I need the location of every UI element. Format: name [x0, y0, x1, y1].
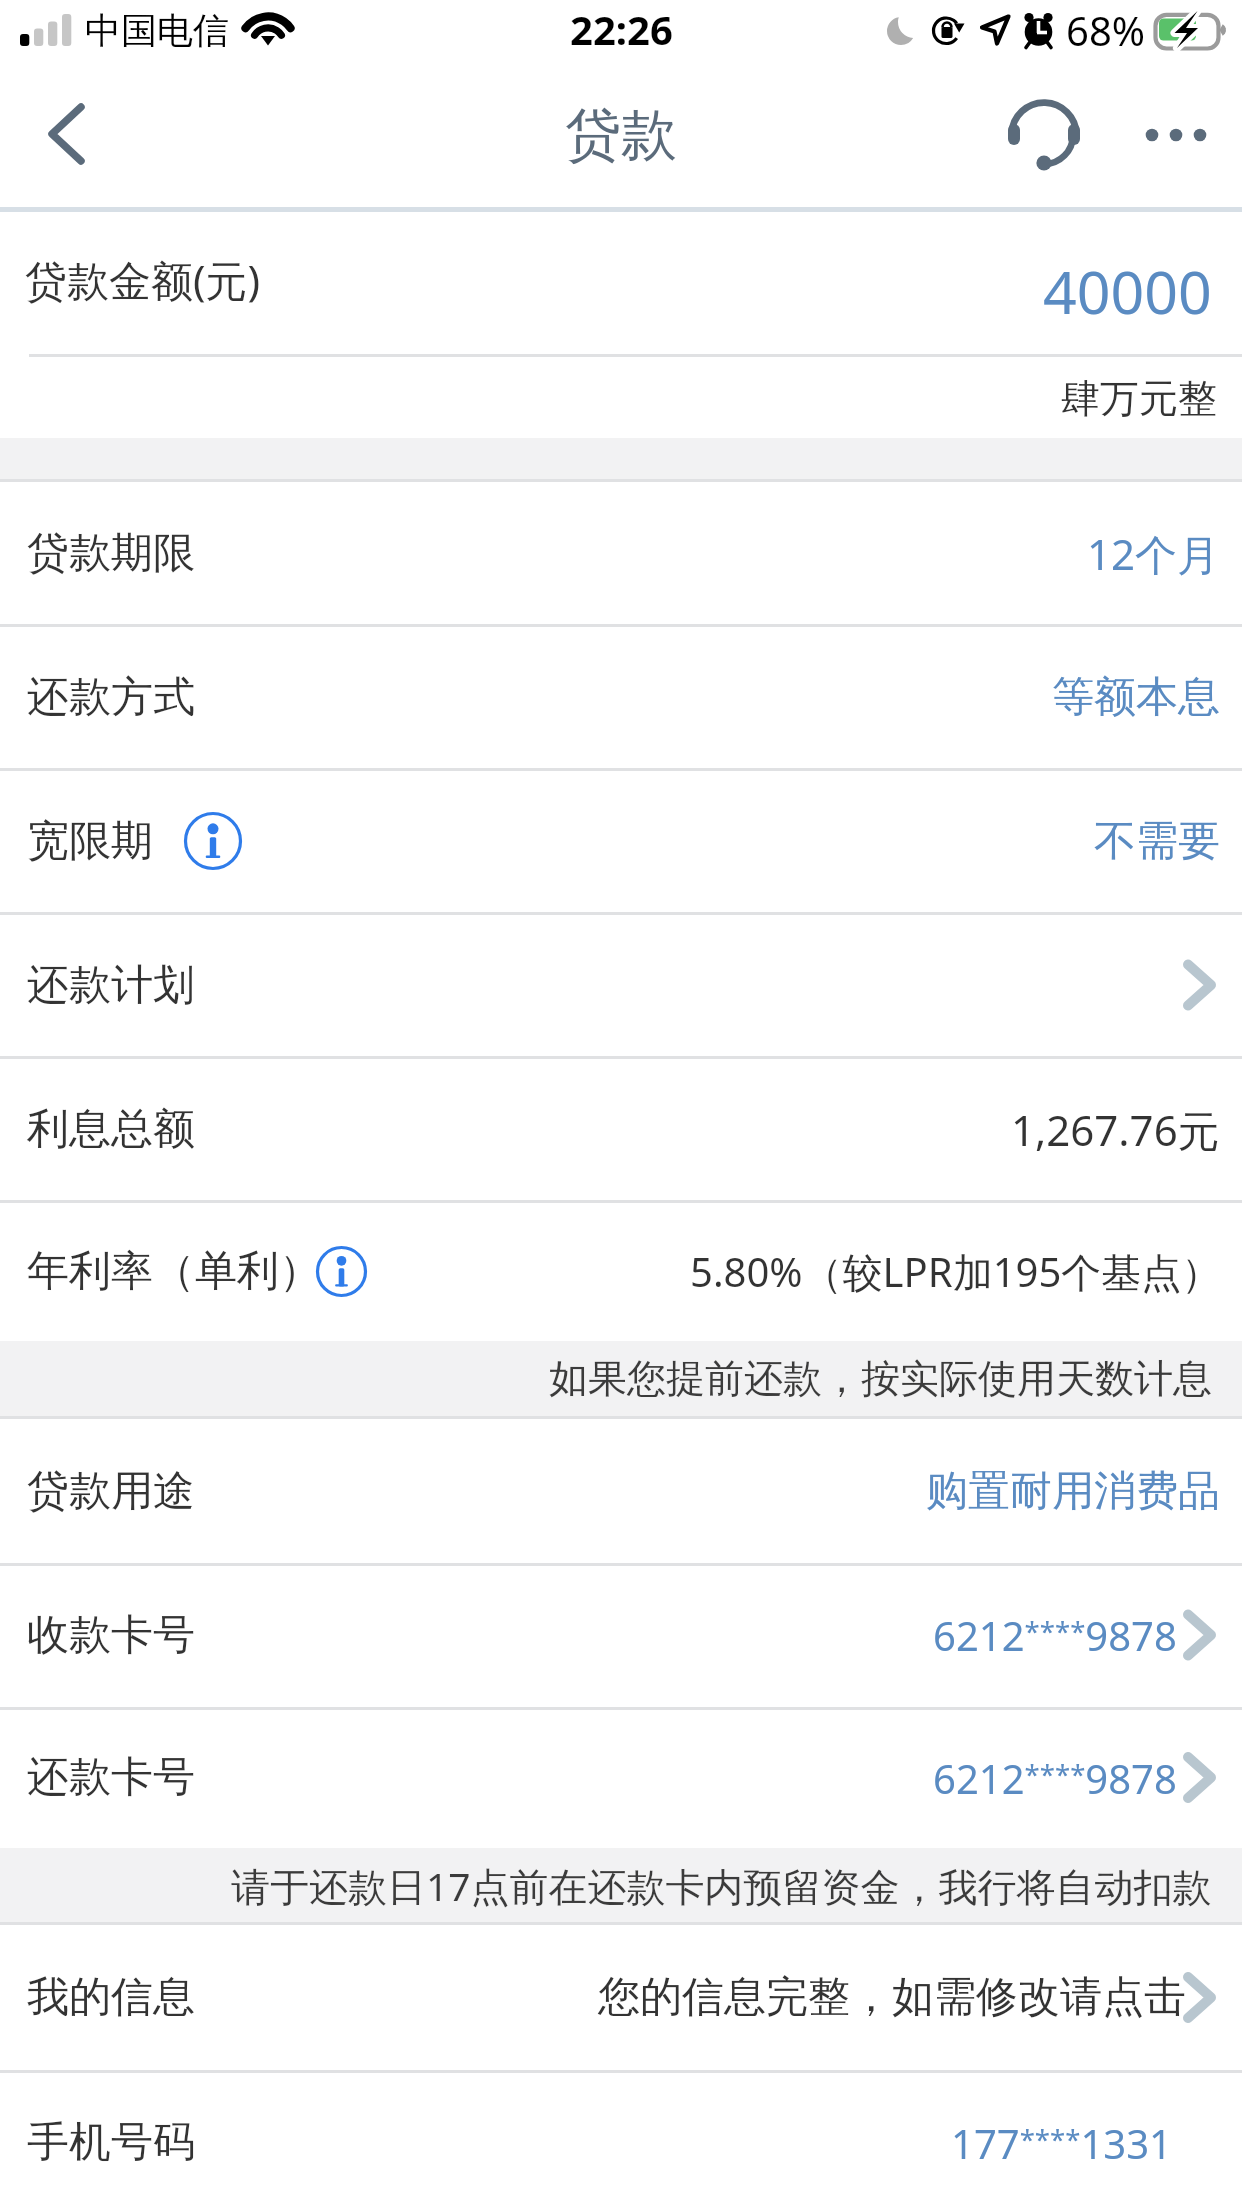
button[interactable]: Customer service — [995, 70, 1095, 207]
staticText: 6212****9878 — [933, 1751, 1177, 1805]
staticText: 还款卡号 — [27, 1751, 195, 1804]
staticText: 5.80%（较LPR加195个基点） — [690, 1244, 1222, 1299]
button[interactable]: 肆万元整 — [0, 357, 1242, 438]
staticText: 年利率（单利） — [27, 1245, 321, 1298]
button[interactable]: 贷款用途 — [0, 1419, 1242, 1563]
staticText: 我的信息 — [27, 1971, 195, 2024]
staticText: 贷款用途 — [27, 1465, 195, 1518]
staticText: 不需要 — [1094, 815, 1220, 868]
button[interactable]: 还款计划 — [0, 913, 1242, 1057]
staticText: 贷款金额(元) — [25, 251, 261, 308]
button[interactable]: Back — [0, 70, 130, 207]
staticText: 还款计划 — [27, 959, 195, 1012]
staticText: 22:26 — [570, 2, 673, 56]
button[interactable]: 收款卡号 — [0, 1563, 1242, 1707]
staticText: 12个月 — [1087, 525, 1220, 582]
button[interactable]: 宽限期 — [0, 769, 1242, 913]
staticText: 40000 — [1043, 251, 1212, 331]
staticText: 肆万元整 — [1061, 374, 1217, 423]
staticText: 等额本息 — [1052, 671, 1220, 724]
button[interactable]: 利息总额 — [0, 1057, 1242, 1201]
staticText: 贷款期限 — [27, 527, 195, 580]
staticText: 中国电信 — [85, 8, 229, 53]
staticText: 您的信息完整，如需修改请点击 — [598, 1971, 1186, 2024]
staticText: 177****1331 — [951, 2116, 1172, 2170]
staticText: 宽限期 — [27, 815, 153, 868]
staticText: 贷款 — [565, 100, 677, 171]
staticText: 1,267.76元 — [1011, 1101, 1220, 1158]
staticText: 还款方式 — [27, 671, 195, 724]
staticText: 68% — [1066, 3, 1145, 57]
staticText: 如果您提前还款，按实际使用天数计息 — [549, 1354, 1212, 1403]
button[interactable]: 我的信息 — [0, 1925, 1242, 2070]
button[interactable]: 还款卡号 — [0, 1707, 1242, 1848]
button[interactable]: 还款方式 — [0, 625, 1242, 769]
staticText: 收款卡号 — [27, 1609, 195, 1662]
button[interactable]: 年利率（单利） — [0, 1201, 1242, 1341]
staticText: 购置耐用消费品 — [926, 1465, 1220, 1518]
staticText: 6212****9878 — [933, 1608, 1177, 1662]
button[interactable]: 贷款期限 — [0, 482, 1242, 625]
staticText: 利息总额 — [27, 1103, 195, 1156]
button[interactable]: More options — [1120, 70, 1230, 207]
button[interactable]: 贷款金额(元) — [0, 212, 1242, 354]
staticText: 请于还款日17点前在还款卡内预留资金，我行将自动扣款 — [231, 1859, 1212, 1912]
staticText: 手机号码 — [27, 2116, 195, 2169]
button[interactable]: 手机号码 — [0, 2070, 1242, 2208]
